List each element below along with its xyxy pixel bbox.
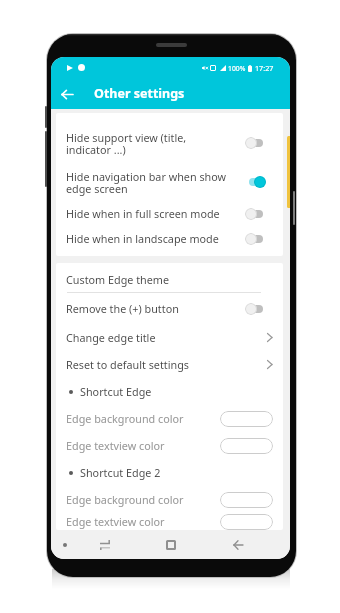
- staticText: Hide when in full screen mode: [66, 206, 245, 221]
- staticText: Shortcut Edge 2: [80, 465, 161, 480]
- button[interactable]: Hide support view (title, indicator ...): [66, 123, 273, 163]
- staticText: 100%: [228, 64, 246, 73]
- staticText: Custom Edge theme: [66, 272, 170, 287]
- staticText: Shortcut Edge: [80, 384, 152, 399]
- staticText: 17:27: [255, 63, 274, 73]
- button[interactable]: Recents: [94, 534, 116, 556]
- button[interactable]: Edge background color: [66, 405, 273, 432]
- staticText: Change edge title: [66, 330, 267, 345]
- staticText: Reset to default settings: [66, 357, 267, 372]
- staticText: Edge textview color: [66, 514, 220, 529]
- button[interactable]: Edge textview color: [66, 513, 273, 530]
- staticText: Remove the (+) button: [66, 301, 245, 316]
- staticText: Hide when in landscape mode: [66, 231, 245, 246]
- button[interactable]: Change edge title: [66, 324, 273, 351]
- button[interactable]: Back: [227, 534, 249, 556]
- button[interactable]: Reset to default settings: [66, 351, 273, 378]
- button[interactable]: Edge background color: [66, 486, 273, 513]
- staticText: Edge background color: [66, 411, 220, 426]
- button[interactable]: Hide navigation bar when show edge scree…: [66, 163, 273, 201]
- button[interactable]: Remove the (+) button: [66, 293, 273, 324]
- staticText: Edge textview color: [66, 438, 220, 453]
- staticText: Edge background color: [66, 492, 220, 507]
- button[interactable]: Navigate up: [55, 82, 79, 106]
- staticText: Hide support view (title, indicator ...): [66, 130, 245, 157]
- button[interactable]: Hide when in full screen mode: [66, 201, 273, 226]
- button[interactable]: Home: [160, 534, 182, 556]
- staticText: Hide navigation bar when show edge scree…: [66, 169, 245, 196]
- button[interactable]: Edge textview color: [66, 432, 273, 459]
- button[interactable]: Hide when in landscape mode: [66, 226, 273, 251]
- staticText: Other settings: [94, 85, 185, 102]
